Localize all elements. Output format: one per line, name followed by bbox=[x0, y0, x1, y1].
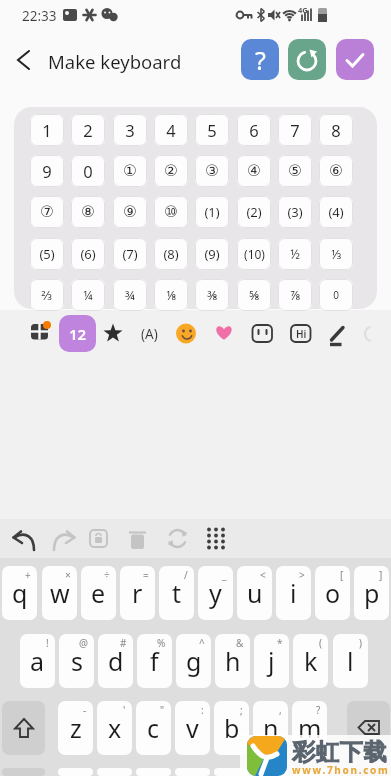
button[interactable] bbox=[101, 320, 125, 346]
button[interactable]: ⑧ bbox=[71, 196, 105, 228]
button[interactable]: (2) bbox=[237, 196, 271, 228]
staticText: × bbox=[65, 568, 71, 582]
button[interactable]: v bbox=[175, 701, 210, 755]
button[interactable]: r bbox=[120, 566, 155, 620]
staticText: ③ bbox=[205, 162, 219, 180]
button[interactable]: 6 bbox=[237, 114, 271, 146]
button[interactable]: m bbox=[292, 701, 327, 755]
button[interactable]: p bbox=[354, 566, 389, 620]
button[interactable]: ① bbox=[113, 155, 147, 187]
staticText: Hi bbox=[296, 327, 307, 341]
button[interactable] bbox=[288, 320, 312, 346]
button[interactable]: ⑨ bbox=[113, 196, 147, 228]
button[interactable]: 8 bbox=[319, 114, 353, 146]
staticText: ' bbox=[123, 703, 126, 717]
button[interactable]: ② bbox=[154, 155, 188, 187]
button[interactable]: ⅞ bbox=[278, 279, 312, 311]
staticText: 2 bbox=[83, 119, 93, 141]
staticText: ⑤ bbox=[288, 162, 302, 180]
button[interactable]: x bbox=[97, 701, 132, 755]
button[interactable]: h bbox=[215, 634, 250, 688]
staticText: ^ bbox=[199, 636, 205, 650]
button[interactable]: ⑥ bbox=[319, 155, 353, 187]
button[interactable]: 5 bbox=[195, 114, 229, 146]
button[interactable]: g bbox=[176, 634, 211, 688]
button[interactable]: y bbox=[198, 566, 233, 620]
staticText: ½ bbox=[290, 246, 300, 263]
staticText: s bbox=[71, 644, 83, 678]
staticText: , bbox=[279, 703, 282, 717]
button[interactable]: (10) bbox=[237, 238, 271, 270]
button[interactable]: s bbox=[59, 634, 94, 688]
button[interactable]: ④ bbox=[237, 155, 271, 187]
button[interactable]: (5) bbox=[30, 238, 64, 270]
button[interactable]: o bbox=[315, 566, 350, 620]
button[interactable] bbox=[138, 320, 162, 346]
button[interactable] bbox=[212, 320, 236, 346]
button[interactable]: ¾ bbox=[113, 279, 147, 311]
button[interactable]: ? bbox=[241, 39, 279, 80]
staticText: ? bbox=[255, 43, 266, 77]
button[interactable]: w bbox=[42, 566, 77, 620]
button[interactable]: b bbox=[214, 701, 249, 755]
button[interactable]: (9) bbox=[195, 238, 229, 270]
button[interactable]: 3 bbox=[113, 114, 147, 146]
button[interactable]: f bbox=[137, 634, 172, 688]
staticText: ⅓ bbox=[331, 246, 342, 263]
button[interactable]: q bbox=[2, 566, 37, 620]
button[interactable]: n bbox=[253, 701, 288, 755]
button[interactable]: ⅔ bbox=[30, 279, 64, 311]
button[interactable]: 4 bbox=[154, 114, 188, 146]
button[interactable]: (3) bbox=[278, 196, 312, 228]
button[interactable] bbox=[326, 320, 350, 346]
staticText: ⅛ bbox=[166, 287, 177, 304]
button[interactable]: (8) bbox=[154, 238, 188, 270]
button[interactable]: 9 bbox=[30, 155, 64, 187]
button[interactable]: ½ bbox=[278, 238, 312, 270]
button[interactable]: d bbox=[98, 634, 133, 688]
button[interactable]: ⑦ bbox=[30, 196, 64, 228]
button[interactable]: 12 bbox=[59, 315, 96, 352]
button[interactable]: j bbox=[254, 634, 289, 688]
button[interactable]: k bbox=[293, 634, 328, 688]
button[interactable]: ⅝ bbox=[237, 279, 271, 311]
button[interactable]: z bbox=[58, 701, 93, 755]
button[interactable]: 2 bbox=[71, 114, 105, 146]
button[interactable]: l bbox=[333, 634, 368, 688]
button[interactable] bbox=[28, 320, 52, 346]
button[interactable]: c bbox=[136, 701, 171, 755]
button[interactable]: 1 bbox=[30, 114, 64, 146]
button[interactable]: (1) bbox=[195, 196, 229, 228]
button[interactable] bbox=[347, 701, 390, 755]
button[interactable]: ⑩ bbox=[154, 196, 188, 228]
button[interactable]: ③ bbox=[195, 155, 229, 187]
button[interactable]: e bbox=[81, 566, 116, 620]
staticText: (A) bbox=[141, 325, 158, 343]
button[interactable] bbox=[175, 320, 199, 346]
staticText: _ bbox=[222, 568, 227, 582]
staticText: ⑨ bbox=[123, 203, 137, 221]
button[interactable]: ⅓ bbox=[319, 238, 353, 270]
staticText: z bbox=[70, 711, 82, 745]
button[interactable] bbox=[2, 701, 45, 755]
button[interactable]: (6) bbox=[71, 238, 105, 270]
button[interactable]: (7) bbox=[113, 238, 147, 270]
button[interactable]: 0 bbox=[319, 279, 353, 311]
button[interactable]: t bbox=[159, 566, 194, 620]
staticText: % bbox=[157, 636, 166, 650]
button[interactable]: ⅛ bbox=[154, 279, 188, 311]
button[interactable] bbox=[288, 39, 326, 80]
button[interactable]: ⑤ bbox=[278, 155, 312, 187]
button[interactable]: 7 bbox=[278, 114, 312, 146]
button[interactable]: i bbox=[276, 566, 311, 620]
button[interactable]: ⅜ bbox=[195, 279, 229, 311]
button[interactable] bbox=[250, 320, 274, 346]
button[interactable]: ¼ bbox=[71, 279, 105, 311]
button[interactable]: u bbox=[237, 566, 272, 620]
button[interactable]: a bbox=[20, 634, 55, 688]
staticText: ① bbox=[123, 162, 137, 180]
staticText: www.7hon.com bbox=[292, 763, 390, 776]
button[interactable] bbox=[336, 39, 374, 80]
button[interactable]: 0 bbox=[71, 155, 105, 187]
button[interactable]: (4) bbox=[319, 196, 353, 228]
